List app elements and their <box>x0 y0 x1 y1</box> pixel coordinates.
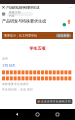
button[interactable]: More <box>67 4 74 10</box>
button[interactable]: Menu <box>2 12 5 16</box>
button[interactable]: Download <box>66 19 72 25</box>
staticText: 点击这里开始编辑文档 <box>41 100 71 103</box>
staticText: ··· <box>69 5 72 10</box>
staticText: 学生五项 <box>29 46 45 51</box>
staticText: 重要提示：此文档需审核 <box>4 34 37 37</box>
button[interactable]: 重要提示：此文档需审核 <box>2 32 73 39</box>
button[interactable]: Back <box>15 111 20 117</box>
button[interactable]: Recents <box>55 111 60 117</box>
staticText: 点击查看 <box>57 34 69 37</box>
staticText: 产品研发及特殊要求生成 <box>6 5 39 10</box>
staticText: 学生填写的：完成 填写 <box>2 88 33 91</box>
staticText: 说明 <box>2 57 8 60</box>
staticText: 请根据要求完成填写 <box>2 82 29 86</box>
staticText: ✕ <box>1 5 5 10</box>
button[interactable]: 搜索文档内容 <box>7 12 33 16</box>
button[interactable]: Close <box>1 4 6 10</box>
staticText: 工程 技术、 <box>2 63 18 67</box>
staticText: 搜索文档内容 <box>9 10 21 18</box>
button[interactable]: Status <box>63 23 66 26</box>
staticText: 产品研发与特殊要求生成 <box>2 18 46 24</box>
button[interactable]: Home <box>35 111 40 117</box>
